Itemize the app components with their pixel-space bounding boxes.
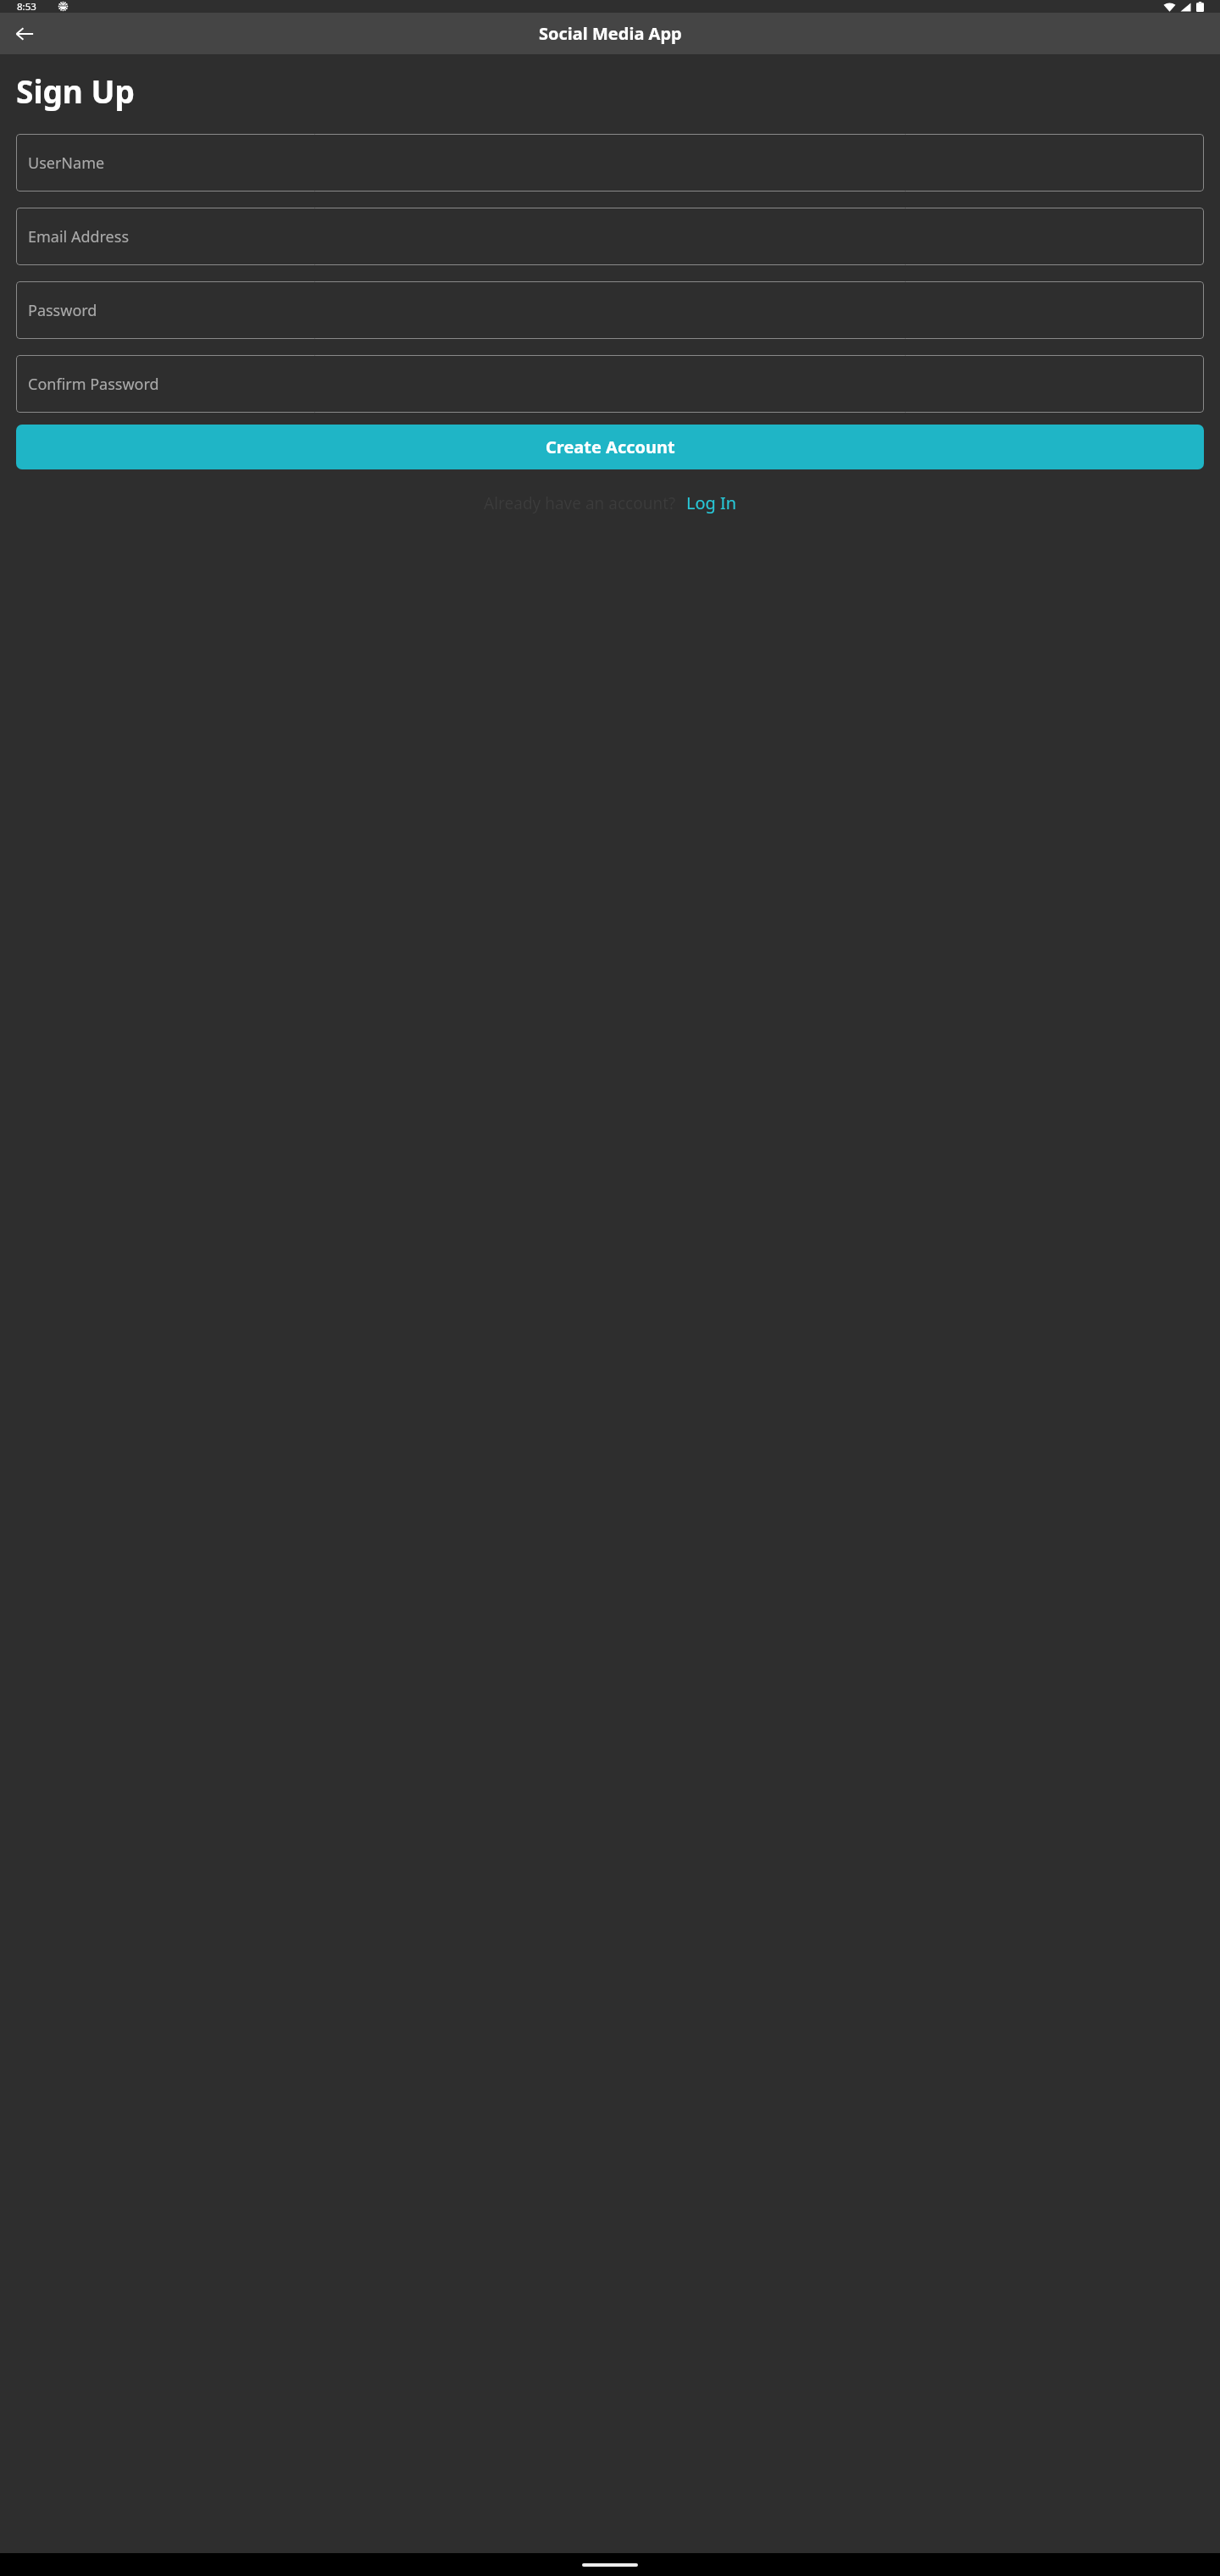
button[interactable]: Create Account bbox=[16, 425, 1204, 469]
staticText: 8:53 bbox=[17, 0, 36, 13]
button[interactable]: Confirm Password bbox=[16, 355, 1204, 413]
button[interactable]: Back bbox=[4, 14, 45, 54]
staticText: Email Address bbox=[28, 226, 130, 247]
button[interactable]: Email Address bbox=[16, 208, 1204, 265]
button[interactable]: Password bbox=[16, 281, 1204, 339]
staticText: UserName bbox=[28, 153, 105, 174]
staticText: Already have an account? bbox=[484, 492, 676, 514]
staticText: Sign Up bbox=[16, 69, 135, 112]
staticText: Confirm Password bbox=[28, 374, 159, 395]
staticText: Social Media App bbox=[539, 22, 682, 45]
button[interactable]: Log In bbox=[686, 491, 737, 514]
staticText: Log In bbox=[686, 491, 737, 514]
staticText: Password bbox=[28, 300, 97, 321]
staticText: Create Account bbox=[546, 436, 675, 458]
button[interactable]: UserName bbox=[16, 134, 1204, 192]
